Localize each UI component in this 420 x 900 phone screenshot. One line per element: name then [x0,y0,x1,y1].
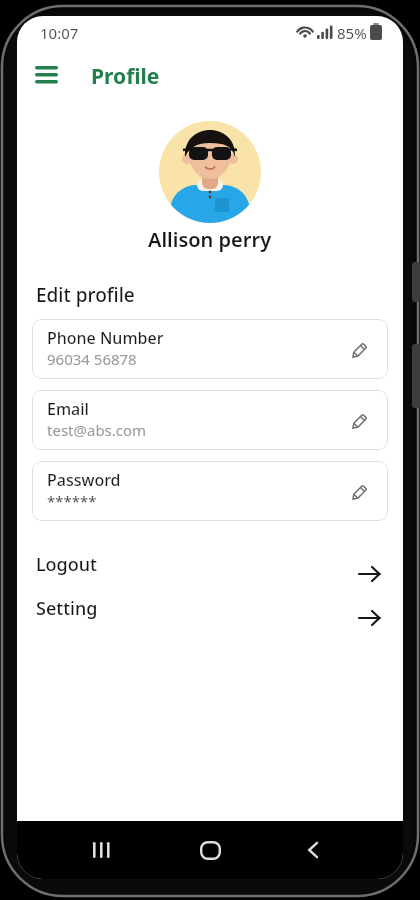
button[interactable]: Logout [30,550,390,590]
button[interactable]: Email [32,390,388,450]
button[interactable]: Setting [30,594,390,634]
staticText: test@abs.com [47,420,147,440]
staticText: Edit profile [36,282,135,308]
staticText: ****** [47,491,97,511]
staticText: Phone Number [47,327,164,349]
staticText: Password [47,469,121,491]
staticText: 85% [337,23,367,43]
button[interactable] [289,821,337,879]
staticText: Allison perry [148,226,272,253]
staticText: 10:07 [40,23,79,43]
staticText: Logout [36,552,97,577]
staticText: Setting [36,596,98,621]
staticText: Email [47,398,89,420]
button[interactable] [27,57,67,93]
button[interactable] [184,821,236,879]
staticText: Profile [91,62,160,91]
button[interactable]: Phone Number [32,319,388,379]
staticText: 96034 56878 [47,349,137,369]
button[interactable]: Password [32,461,388,521]
button[interactable] [75,821,127,879]
